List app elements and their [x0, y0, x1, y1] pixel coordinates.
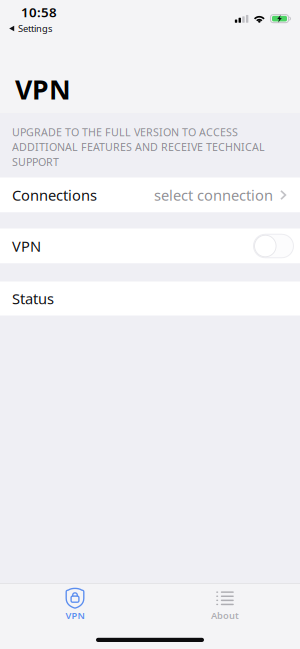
staticText: VPN	[12, 236, 41, 256]
staticText: VPN	[15, 71, 71, 107]
button[interactable]: Settings	[0, 23, 60, 34]
staticText: About	[211, 609, 239, 621]
staticText: Settings	[18, 22, 52, 35]
staticText: VPN	[65, 609, 84, 621]
staticText: Connections	[12, 185, 97, 205]
staticText: UPGRADE TO THE FULL VERSION TO ACCESS AD…	[12, 125, 265, 169]
button[interactable]: VPN	[0, 587, 150, 627]
staticText: select connection	[154, 185, 273, 205]
button[interactable]: Connections	[0, 177, 300, 212]
staticText: 10:58	[21, 3, 57, 21]
staticText: Status	[12, 289, 54, 308]
button[interactable]: About	[150, 587, 300, 627]
